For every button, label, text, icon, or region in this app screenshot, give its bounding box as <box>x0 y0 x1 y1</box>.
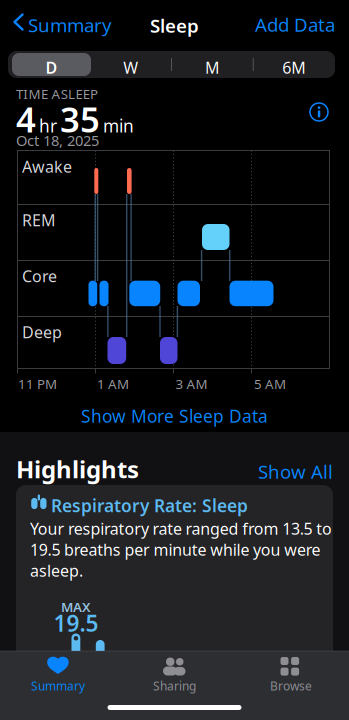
staticText: Browse <box>270 678 312 694</box>
staticText: hr <box>39 114 57 137</box>
staticText: TIME ASLEEP <box>16 85 98 103</box>
staticText: 4 <box>16 96 36 142</box>
staticText: Summary <box>28 12 112 37</box>
staticText: M <box>205 57 220 78</box>
staticText: Highlights <box>16 453 139 485</box>
staticText: Show All <box>258 459 333 484</box>
staticText: 3 AM <box>175 375 207 393</box>
staticText: min <box>103 114 134 137</box>
staticText: 19.5 <box>53 608 98 638</box>
staticText: Sharing <box>153 678 196 694</box>
staticText: Your respiratory rate ranged from 13.5 t… <box>30 518 332 539</box>
staticText: Oct 18, 2025 <box>16 130 99 150</box>
staticText: 1 AM <box>97 375 129 393</box>
staticText: 19.5 breaths per minute while you were <box>30 539 321 560</box>
staticText: Deep <box>22 321 62 343</box>
staticText: MAX <box>61 598 91 616</box>
staticText: 6M <box>282 57 306 78</box>
staticText: REM <box>22 209 56 231</box>
staticText: Core <box>22 265 57 287</box>
staticText: Show More Sleep Data <box>81 404 268 427</box>
staticText: 35 <box>60 96 100 142</box>
staticText: Add Data <box>255 12 335 37</box>
staticText: Summary <box>31 678 85 694</box>
staticText: 5 AM <box>254 375 286 393</box>
staticText: D <box>45 57 57 78</box>
staticText: W <box>123 57 138 78</box>
staticText: Sleep <box>150 13 199 38</box>
staticText: asleep. <box>30 560 83 581</box>
staticText: Awake <box>22 156 72 177</box>
staticText: Respiratory Rate: Sleep <box>51 494 248 517</box>
staticText: 11 PM <box>18 375 57 393</box>
